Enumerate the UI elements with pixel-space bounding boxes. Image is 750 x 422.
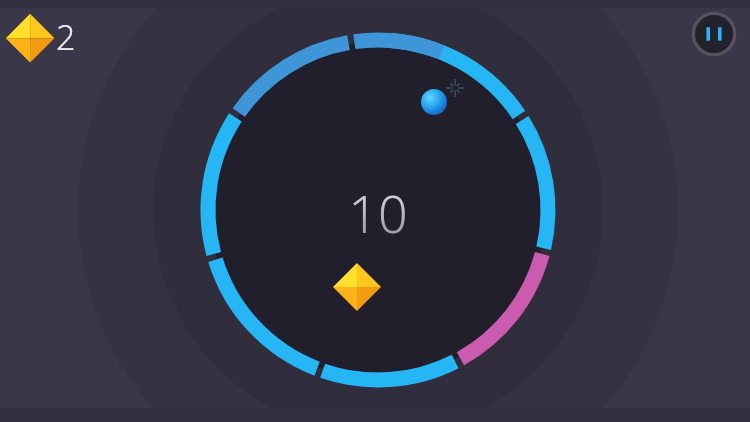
staticText: 10 [338, 177, 418, 237]
staticText: 2 [56, 14, 76, 60]
button[interactable]: Pause [690, 10, 738, 58]
button[interactable]: 2 [4, 8, 94, 66]
